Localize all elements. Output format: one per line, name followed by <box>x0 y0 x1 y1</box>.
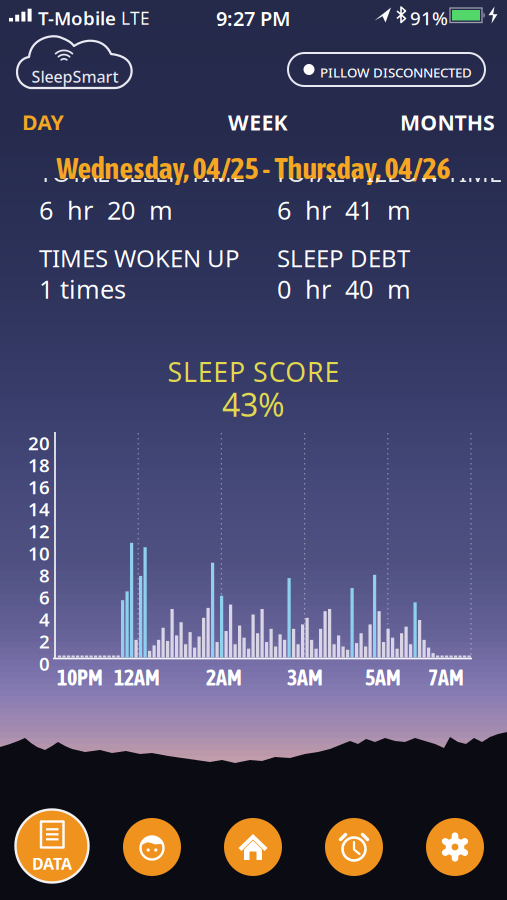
staticText: SLEEP DEBT <box>277 242 410 274</box>
staticText: 2AM <box>206 665 242 690</box>
button[interactable]: PILLOW DISCONNECTED <box>288 53 485 86</box>
staticText: 0 hr 40 m <box>277 272 411 306</box>
staticText: TIMES WOKEN UP <box>39 242 240 274</box>
staticText: 9:27 PM <box>216 5 291 32</box>
button[interactable]: Alarms <box>325 818 383 876</box>
staticText: 43% <box>222 383 285 425</box>
staticText: 4 <box>39 607 50 632</box>
staticText: 10 <box>28 541 50 566</box>
staticText: 12AM <box>114 665 160 690</box>
staticText: T-Mobile <box>38 5 116 30</box>
staticText: DATA <box>32 853 72 874</box>
staticText: 5AM <box>365 665 401 690</box>
staticText: 10PM <box>57 665 103 690</box>
staticText: 2 <box>39 629 50 654</box>
staticText: Wednesday, 04/25 - Thursday, 04/26 <box>56 151 450 185</box>
staticText: SLEEP SCORE <box>167 354 339 389</box>
staticText: LTE <box>121 6 150 29</box>
button[interactable]: MONTHS <box>400 108 495 136</box>
staticText: PILLOW DISCONNECTED <box>320 63 472 81</box>
staticText: SleepSmart <box>31 66 118 87</box>
staticText: 12 <box>28 519 50 543</box>
button[interactable]: DATA <box>14 808 90 884</box>
button[interactable]: Settings <box>426 818 484 876</box>
staticText: TOTAL PILLOW TIME <box>274 157 502 188</box>
staticText: TOTAL SLEEP TIME <box>39 157 245 188</box>
staticText: 18 <box>28 453 50 477</box>
staticText: 6 hr 41 m <box>277 193 411 227</box>
staticText: 16 <box>28 475 50 499</box>
button[interactable]: DAY <box>22 108 63 136</box>
staticText: 6 hr 20 m <box>39 193 173 227</box>
staticText: 14 <box>28 497 50 521</box>
staticText: 8 <box>39 563 50 588</box>
staticText: 6 <box>39 585 50 610</box>
staticText: 0 <box>39 651 50 676</box>
button[interactable]: WEEK <box>228 108 288 136</box>
staticText: 7AM <box>428 665 464 690</box>
staticText: DAY <box>22 108 63 136</box>
staticText: 20 <box>28 430 50 455</box>
button[interactable]: Child <box>123 818 181 876</box>
staticText: MONTHS <box>400 108 495 136</box>
staticText: 3AM <box>287 665 323 690</box>
staticText: 91% <box>410 5 448 30</box>
staticText: WEEK <box>228 108 288 136</box>
button[interactable]: Home <box>224 818 282 876</box>
staticText: 1 times <box>39 272 126 306</box>
